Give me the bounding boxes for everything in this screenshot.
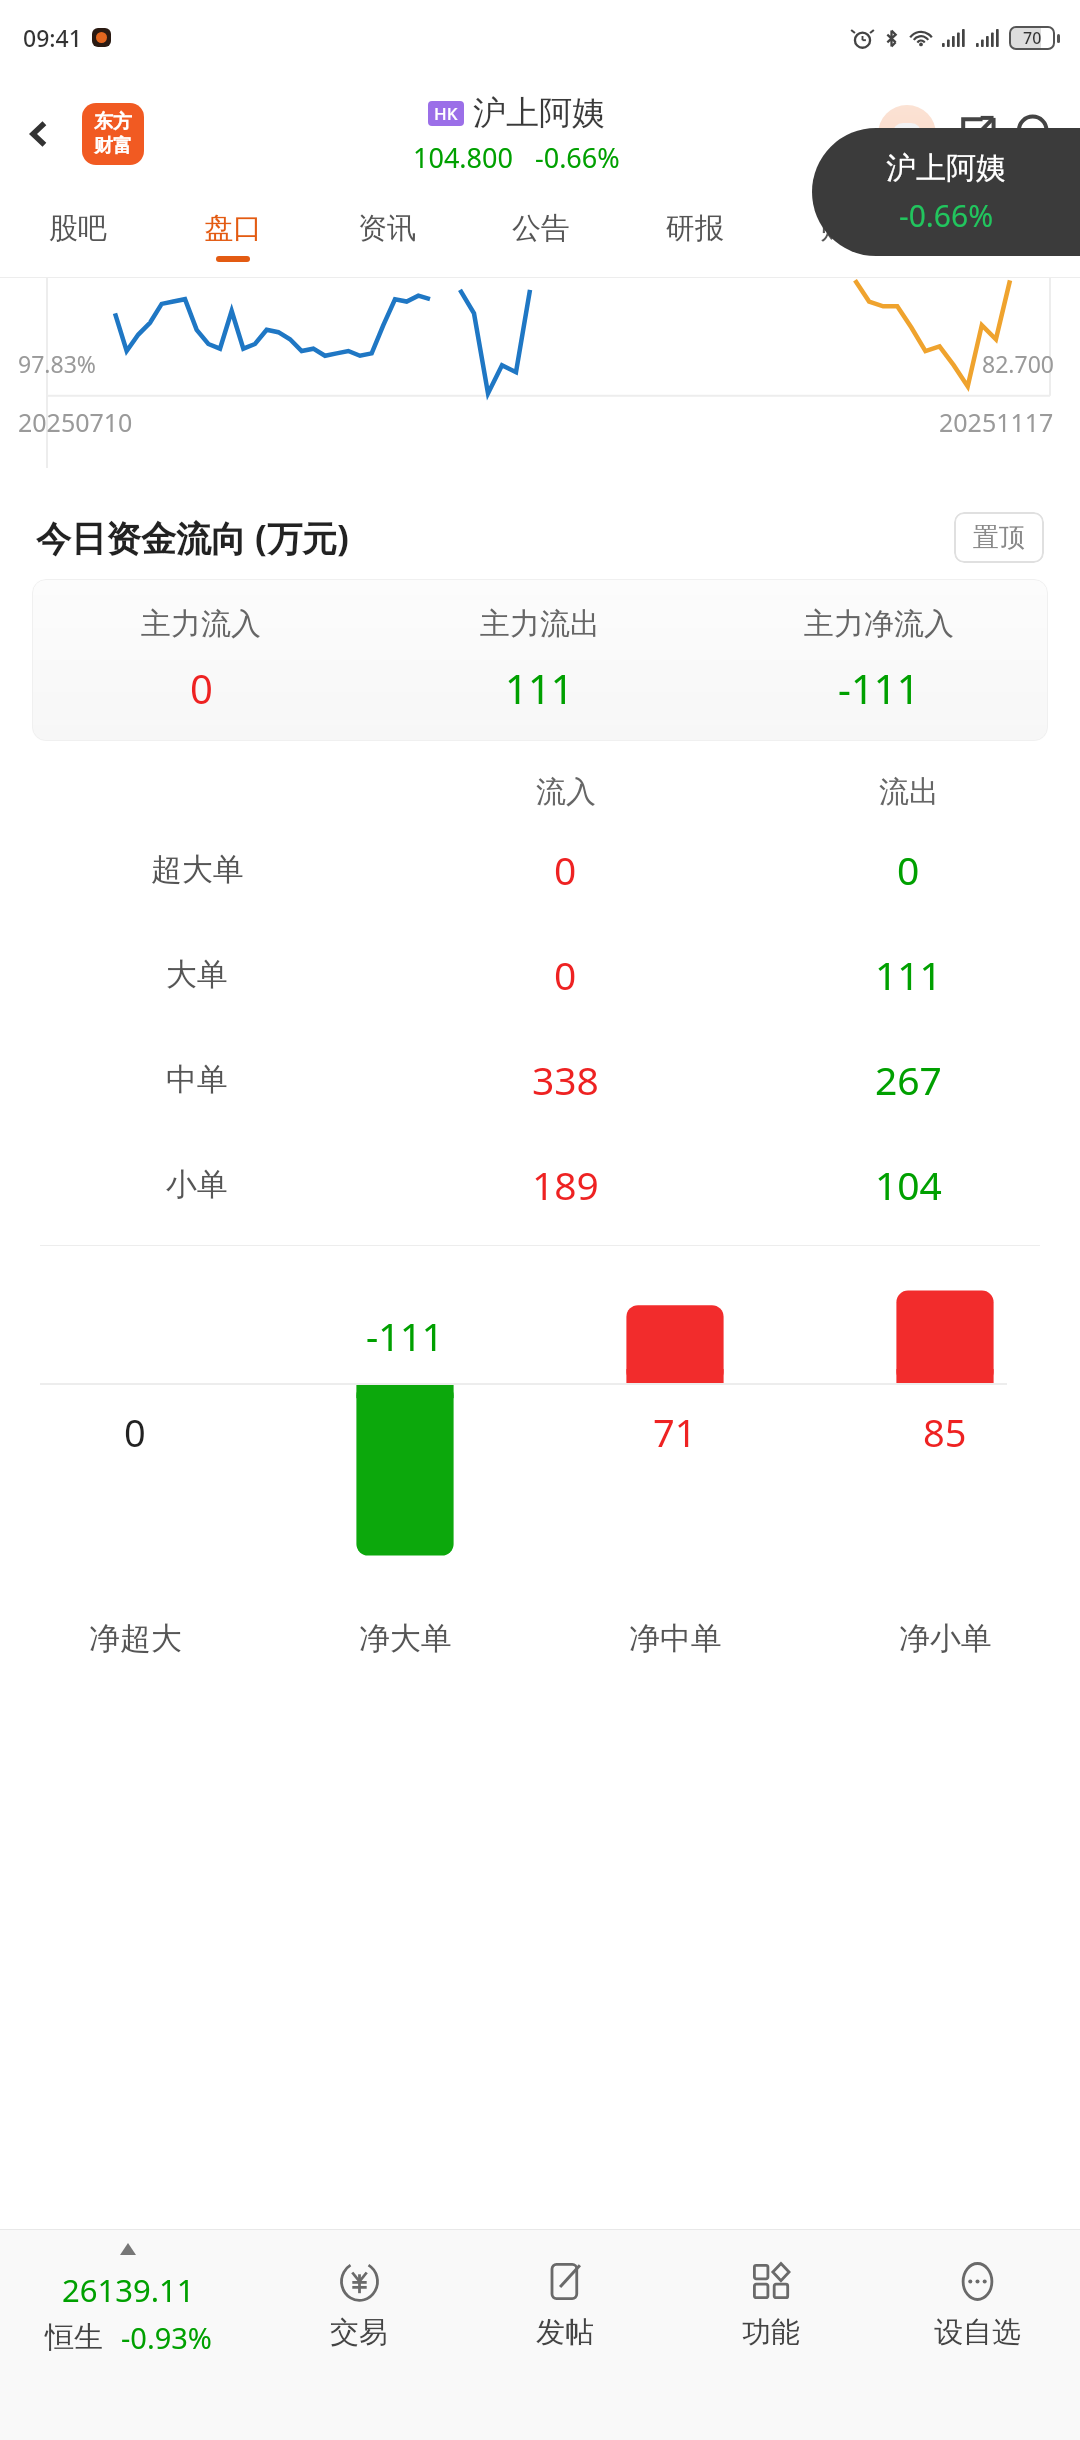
staticText: 研报 <box>666 210 724 247</box>
staticText: 净超大 <box>89 1619 182 1658</box>
button[interactable]: 功能 <box>668 2230 874 2380</box>
staticText: 111 <box>875 948 942 1001</box>
staticText: 盘口 <box>204 210 262 247</box>
staticText: 主力流出 <box>480 605 600 643</box>
staticText: 财务 <box>820 210 878 247</box>
staticText: 85 <box>923 1406 967 1458</box>
button[interactable]: 沪上阿姨 <box>812 128 1080 256</box>
staticText: 主力流入 <box>141 605 261 643</box>
staticText: 资料 <box>974 210 1032 247</box>
button[interactable]: 股吧 <box>0 193 155 278</box>
staticText: 71 <box>653 1406 697 1458</box>
button[interactable]: 设自选 <box>874 2230 1080 2380</box>
staticText: -111 <box>366 1310 444 1362</box>
staticText: 置顶 <box>973 521 1025 554</box>
button[interactable]: 东方财富 <box>82 103 144 165</box>
staticText: 交易 <box>330 2314 388 2351</box>
staticText: -111 <box>838 661 920 715</box>
button[interactable]: Search <box>1012 111 1058 157</box>
button[interactable]: AI助手 <box>878 105 936 163</box>
button[interactable] <box>540 1246 810 1676</box>
staticText: -0.66% <box>899 195 994 236</box>
staticText: 发帖 <box>536 2314 594 2351</box>
button[interactable]: 置顶 <box>954 512 1044 563</box>
staticText: 70 <box>1023 27 1042 49</box>
staticText: 东方 <box>94 110 132 134</box>
button[interactable]: 26139.11 <box>0 2230 256 2380</box>
button[interactable]: 盘口 <box>155 193 310 278</box>
staticText: 0 <box>554 843 577 896</box>
staticText: 设自选 <box>934 2314 1021 2351</box>
staticText: -0.93% <box>121 2318 212 2357</box>
staticText: 0 <box>124 1406 146 1458</box>
staticText: 沪上阿姨 <box>886 149 1006 187</box>
staticText: 财富 <box>94 134 132 158</box>
staticText: 104.800 <box>413 139 513 176</box>
button[interactable]: 财务 <box>772 193 926 278</box>
staticText: 大单 <box>166 955 228 994</box>
staticText: 主力净流入 <box>804 605 954 643</box>
staticText: 338 <box>532 1053 599 1106</box>
staticText: 09:41 <box>23 22 82 53</box>
staticText: 111 <box>505 661 574 715</box>
button[interactable]: 公告 <box>464 193 618 278</box>
staticText: HK <box>434 102 458 125</box>
staticText: 82.700 <box>982 348 1054 379</box>
button[interactable]: 研报 <box>618 193 772 278</box>
staticText: 267 <box>875 1053 942 1106</box>
button[interactable]: 资讯 <box>310 193 464 278</box>
button[interactable]: 交易 <box>256 2230 462 2380</box>
staticText: 97.83% <box>18 348 96 379</box>
staticText: 流出 <box>879 773 939 811</box>
staticText: 中单 <box>166 1060 228 1099</box>
staticText: 今日资金流向 (万元) <box>36 514 349 562</box>
button[interactable]: 资料 <box>926 193 1080 278</box>
staticText: 104 <box>875 1158 942 1211</box>
staticText: 流入 <box>536 773 596 811</box>
staticText: 沪上阿姨 <box>473 92 605 134</box>
staticText: 股吧 <box>49 210 107 247</box>
staticText: 189 <box>532 1158 599 1211</box>
button[interactable]: 发帖 <box>462 2230 668 2380</box>
button[interactable]: 超大单 <box>0 817 1080 922</box>
staticText: 净小单 <box>899 1619 992 1658</box>
staticText: 20250710 <box>18 405 133 439</box>
staticText: 0 <box>897 843 920 896</box>
button[interactable]: 主力流入 <box>32 579 1048 741</box>
staticText: 净大单 <box>359 1619 452 1658</box>
button[interactable]: 小单 <box>0 1132 1080 1237</box>
staticText: 20251117 <box>939 405 1054 439</box>
button[interactable]: 中单 <box>0 1027 1080 1132</box>
button[interactable] <box>270 1246 540 1676</box>
staticText: 功能 <box>742 2314 800 2351</box>
staticText: 0 <box>190 661 213 715</box>
staticText: 0 <box>554 948 577 1001</box>
staticText: 资讯 <box>358 210 416 247</box>
staticText: 恒生 <box>45 2319 103 2356</box>
staticText: 小单 <box>166 1165 228 1204</box>
button[interactable]: Share <box>954 111 1000 157</box>
button[interactable]: 大单 <box>0 922 1080 1027</box>
button[interactable] <box>810 1246 1080 1676</box>
staticText: 公告 <box>512 210 570 247</box>
button[interactable] <box>0 1246 270 1676</box>
staticText: 26139.11 <box>62 2269 195 2311</box>
button[interactable]: Back <box>14 111 64 157</box>
staticText: 净中单 <box>629 1619 722 1658</box>
staticText: 超大单 <box>151 850 244 889</box>
staticText: -0.66% <box>535 139 620 176</box>
